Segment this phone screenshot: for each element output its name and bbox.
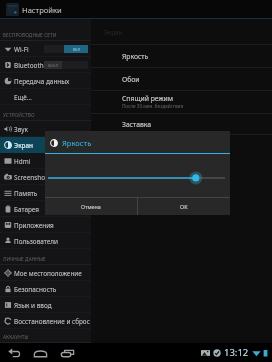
- button[interactable]: Screenshot: [0, 169, 91, 185]
- button[interactable]: Recents: [56, 343, 79, 362]
- staticText: АККАУНТЫ: [3, 334, 29, 340]
- staticText: После 30 мин. бездействия: [122, 103, 184, 109]
- staticText: Обои: [122, 75, 140, 84]
- staticText: Отмена: [81, 203, 101, 210]
- staticText: Экран: [104, 28, 123, 36]
- staticText: ВЫКЛ: [48, 63, 58, 68]
- staticText: УСТРОЙСТВО: [3, 112, 35, 118]
- button[interactable]: Звук: [0, 121, 91, 137]
- staticText: Батарея: [14, 205, 39, 214]
- button[interactable]: Мое местоположение: [0, 265, 91, 281]
- button[interactable]: Settings icon: [6, 3, 19, 16]
- staticText: Hdmi: [14, 157, 31, 166]
- staticText: Экран: [14, 141, 33, 150]
- staticText: Яркость: [62, 138, 92, 148]
- button[interactable]: Home: [29, 343, 52, 362]
- staticText: ЛИЧНЫЕ ДАННЫЕ: [3, 256, 46, 262]
- staticText: БЕСПРОВОДНЫЕ СЕТИ: [3, 32, 57, 38]
- staticText: Ещё…: [14, 93, 32, 102]
- staticText: Яркость: [122, 52, 149, 61]
- staticText: Язык и ввод: [14, 301, 52, 310]
- staticText: Приложения: [14, 221, 54, 230]
- staticText: OK: [180, 203, 188, 210]
- staticText: Wi-Fi: [14, 45, 29, 54]
- staticText: Bluetooth: [14, 61, 44, 70]
- button[interactable]: Пользователи: [0, 233, 91, 249]
- staticText: Настройки: [22, 5, 62, 15]
- button[interactable]: Безопасность: [0, 281, 91, 297]
- button[interactable]: Спящий режим: [91, 91, 272, 114]
- button[interactable]: Восстановление и сброс: [0, 313, 91, 329]
- button[interactable]: Батарея: [0, 201, 91, 217]
- staticText: Заставка: [122, 120, 152, 129]
- button[interactable]: Приложения: [0, 217, 91, 233]
- staticText: Спящий режим: [122, 94, 174, 103]
- button[interactable]: Обои: [91, 68, 272, 91]
- button[interactable]: Bluetooth: [0, 57, 91, 73]
- button[interactable]: OK: [138, 198, 230, 215]
- button[interactable]: Hdmi: [0, 153, 91, 169]
- staticText: Память: [14, 189, 38, 198]
- staticText: Звук: [14, 125, 28, 134]
- staticText: Пользователи: [14, 237, 58, 246]
- button[interactable]: Яркость: [91, 45, 272, 68]
- button[interactable]: Передача данных: [0, 73, 91, 89]
- staticText: Мое местоположение: [14, 269, 82, 278]
- button[interactable]: Wi-Fi: [0, 41, 91, 57]
- staticText: Восстановление и сброс: [14, 317, 90, 326]
- staticText: 13:12: [224, 346, 249, 359]
- button[interactable]: Язык и ввод: [0, 297, 91, 313]
- button[interactable]: Ещё…: [0, 89, 91, 105]
- button[interactable]: Экран: [0, 137, 91, 153]
- staticText: Передача данных: [14, 77, 70, 86]
- staticText: Screenshot: [14, 173, 48, 182]
- staticText: ВКЛ: [73, 47, 80, 52]
- button[interactable]: Отмена: [45, 198, 137, 215]
- button[interactable]: Back: [2, 343, 25, 362]
- button[interactable]: Память: [0, 185, 91, 201]
- button[interactable]: Заставка: [91, 114, 272, 135]
- staticText: Безопасность: [14, 285, 57, 294]
